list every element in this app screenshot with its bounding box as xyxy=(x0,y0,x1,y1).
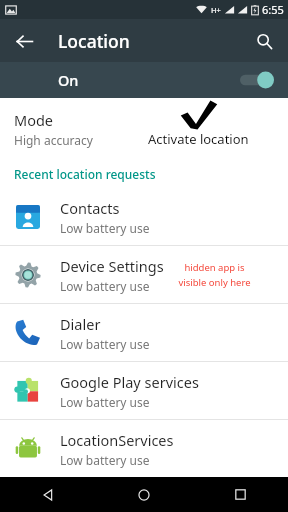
staticText: Contacts xyxy=(60,198,120,218)
staticText: Location xyxy=(58,29,130,53)
staticText: visible only here xyxy=(178,276,251,289)
staticText: hidden app is xyxy=(184,261,245,274)
staticText: Low battery use xyxy=(60,452,150,468)
staticText: 6:55 xyxy=(262,2,284,17)
button[interactable]: Recent apps xyxy=(192,477,288,512)
staticText: Low battery use xyxy=(60,278,150,294)
staticText: Recent location requests xyxy=(14,166,156,182)
staticText: Low battery use xyxy=(60,220,150,236)
staticText: High accuracy xyxy=(14,132,93,148)
staticText: On xyxy=(58,70,79,90)
staticText: Device Settings xyxy=(60,256,164,276)
button[interactable]: Search xyxy=(244,21,284,61)
staticText: Google Play services xyxy=(60,372,199,392)
staticText: Mode xyxy=(14,110,54,130)
button[interactable]: LocationServices xyxy=(0,420,288,477)
button[interactable]: Back xyxy=(4,21,44,61)
staticText: H+ xyxy=(211,5,221,15)
staticText: Dialer xyxy=(60,314,101,334)
staticText: LocationServices xyxy=(60,430,174,450)
button[interactable]: On xyxy=(0,62,288,98)
button[interactable]: Contacts xyxy=(0,188,288,245)
button[interactable]: Dialer xyxy=(0,304,288,361)
button[interactable]: Mode xyxy=(0,98,288,160)
staticText: Activate location xyxy=(148,130,249,148)
button[interactable]: Back xyxy=(0,477,96,512)
button[interactable]: Google Play services xyxy=(0,362,288,419)
button[interactable]: Device Settings xyxy=(0,246,288,303)
staticText: Low battery use xyxy=(60,336,150,352)
button[interactable]: Home xyxy=(96,477,192,512)
staticText: Low battery use xyxy=(60,394,150,410)
